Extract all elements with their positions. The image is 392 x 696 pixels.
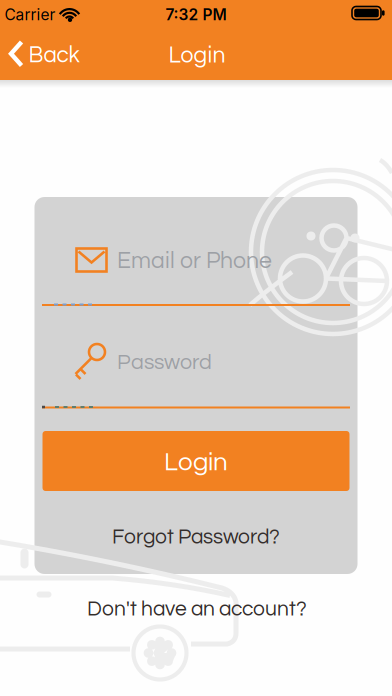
button[interactable]: Back xyxy=(0,0,392,696)
button[interactable]: Password xyxy=(0,0,392,696)
staticText: 7:32 PM xyxy=(165,5,226,24)
staticText: Email or Phone xyxy=(117,249,272,273)
staticText: Password xyxy=(117,351,212,373)
staticText: Don't have an account? xyxy=(87,598,307,620)
staticText: Carrier xyxy=(4,5,55,24)
staticText: Back xyxy=(28,44,79,67)
button[interactable]: Email or Phone xyxy=(0,0,392,696)
button[interactable]: Login xyxy=(42,431,349,491)
staticText: Forgot Password? xyxy=(112,526,280,548)
button[interactable]: Forgot Password? xyxy=(71,520,321,554)
button[interactable]: Don't have an account? xyxy=(47,592,347,626)
staticText: Login xyxy=(168,44,225,67)
staticText: Login xyxy=(164,449,228,476)
